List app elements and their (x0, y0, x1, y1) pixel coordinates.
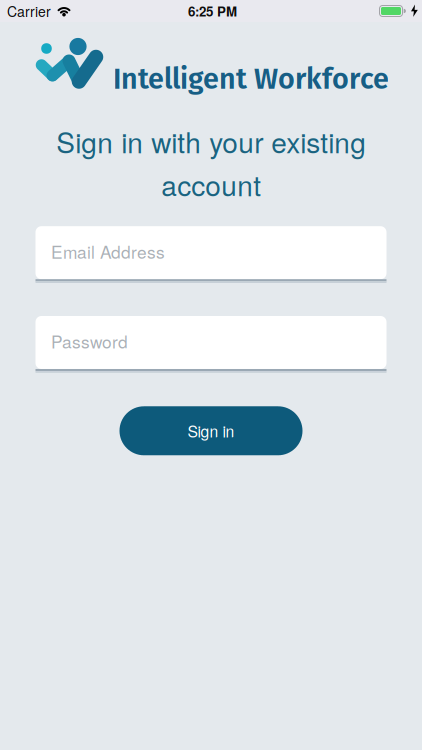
staticText: Email Address (51, 239, 165, 264)
button[interactable]: Sign in (119, 406, 302, 455)
staticText: Password (51, 329, 128, 353)
staticText: Sign in (187, 419, 234, 442)
textField[interactable]: Password (35, 316, 386, 373)
staticText: Carrier (7, 1, 51, 21)
staticText: Sign in with your existing account (56, 121, 366, 204)
textField[interactable]: Email Address (35, 226, 386, 283)
staticText: Intelligent Workforce (113, 62, 389, 96)
staticText: 6:25 PM (188, 1, 237, 21)
